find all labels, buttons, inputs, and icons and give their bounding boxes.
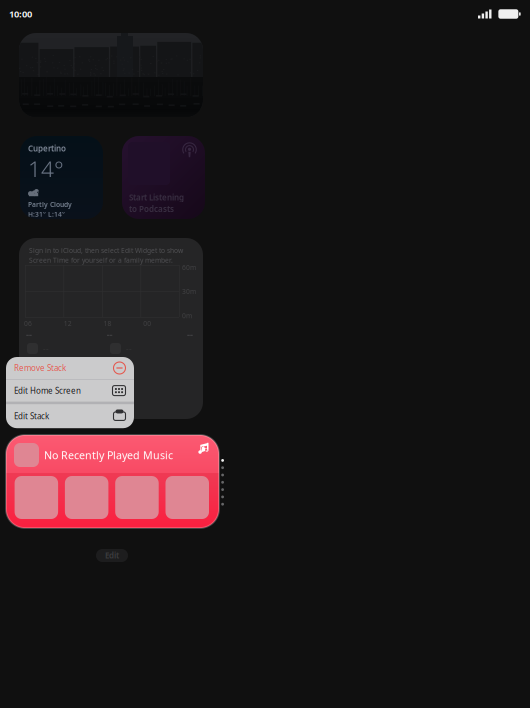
staticText: to Podcasts [129, 204, 174, 214]
staticText: Sign in to iCloud, then select Edit Widg… [29, 246, 183, 255]
button[interactable]: Remove Stack [6, 357, 134, 379]
staticText: 12 [64, 319, 72, 328]
staticText: -- [43, 362, 49, 373]
staticText: -- [126, 400, 132, 411]
staticText: Edit [105, 550, 119, 561]
staticText: -- [43, 381, 49, 392]
staticText: 10:00 [9, 8, 32, 20]
button[interactable]: Edit [96, 549, 128, 562]
staticText: 0m [182, 311, 192, 320]
staticText: Edit Stack [14, 411, 49, 421]
staticText: 30m [182, 287, 196, 296]
staticText: No Recently Played Music [44, 448, 173, 462]
button[interactable]: Edit Home Screen [6, 380, 134, 402]
staticText: -- [106, 328, 112, 340]
staticText: Screen Time for yourself or a family mem… [29, 256, 173, 265]
staticText: Edit Home Screen [14, 385, 81, 396]
staticText: -- [43, 400, 49, 411]
staticText: -- [187, 328, 193, 340]
staticText: Start Listening [129, 192, 184, 203]
staticText: Remove Stack [14, 363, 66, 373]
staticText: Cupertino [28, 143, 66, 154]
staticText: H:31° L:14° [28, 210, 65, 219]
staticText: 60m [182, 263, 196, 272]
staticText: -- [26, 328, 32, 340]
staticText: 14° [28, 154, 64, 184]
staticText: Partly Cloudy [28, 200, 72, 209]
staticText: 06 [24, 319, 32, 328]
button[interactable]: Edit Stack [6, 404, 134, 428]
staticText: 18 [103, 319, 111, 328]
staticText: 00 [143, 319, 151, 328]
